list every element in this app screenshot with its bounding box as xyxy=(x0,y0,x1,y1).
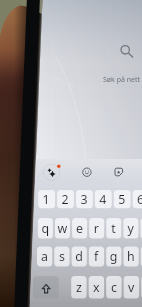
other: Phone showing Google search with on-scre… xyxy=(0,0,142,307)
